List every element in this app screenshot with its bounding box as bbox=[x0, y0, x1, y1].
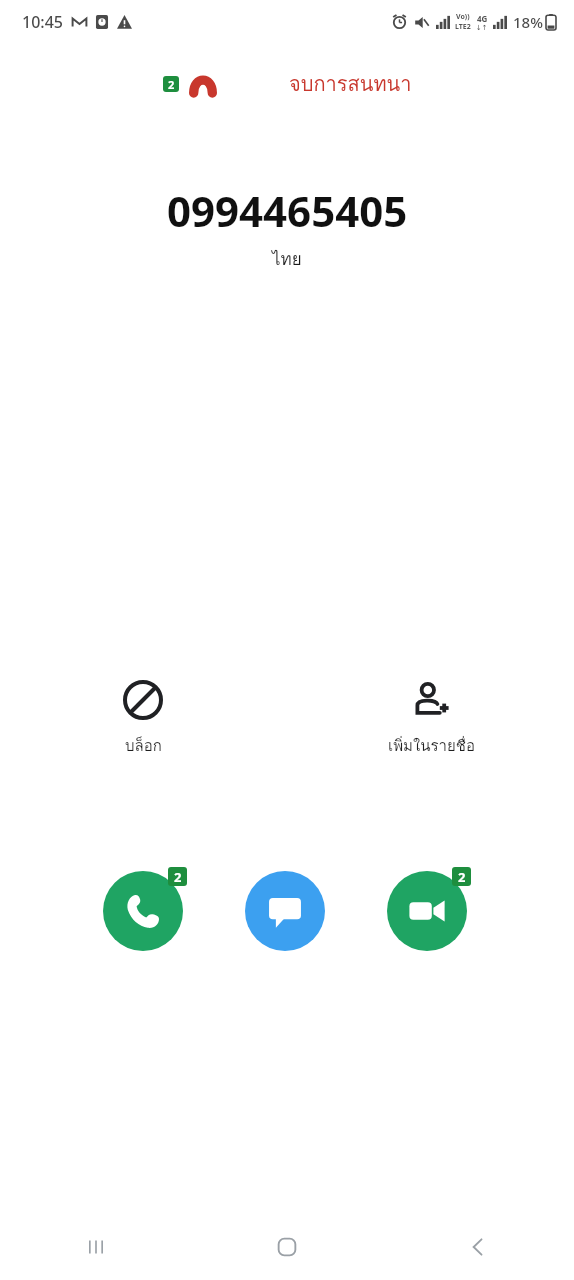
button[interactable]: บล็อก bbox=[53, 676, 233, 762]
staticText: 0994465405 bbox=[167, 182, 408, 239]
button[interactable]: เพิ่มในรายชื่อ bbox=[341, 676, 521, 762]
staticText: 4G bbox=[477, 13, 488, 24]
button[interactable]: Back bbox=[450, 1219, 506, 1275]
staticText: Vo)) bbox=[456, 12, 470, 22]
button[interactable]: Video call bbox=[387, 867, 471, 951]
staticText: 18% bbox=[513, 12, 543, 32]
staticText: ↓↑ bbox=[476, 24, 488, 32]
button[interactable]: Recents bbox=[68, 1219, 124, 1275]
button[interactable]: Call bbox=[103, 867, 187, 951]
staticText: LTE2 bbox=[455, 22, 471, 32]
button[interactable]: Home bbox=[259, 1219, 315, 1275]
staticText: ไทย bbox=[272, 245, 302, 272]
staticText: 2 bbox=[168, 77, 175, 92]
staticText: จบการสนทนา bbox=[289, 68, 412, 100]
staticText: 2 bbox=[458, 868, 466, 886]
staticText: 10:45 bbox=[22, 11, 63, 33]
staticText: เพิ่มในรายชื่อ bbox=[388, 734, 475, 758]
staticText: 2 bbox=[174, 868, 182, 886]
staticText: บล็อก bbox=[125, 734, 162, 758]
button[interactable]: Message bbox=[245, 867, 329, 951]
